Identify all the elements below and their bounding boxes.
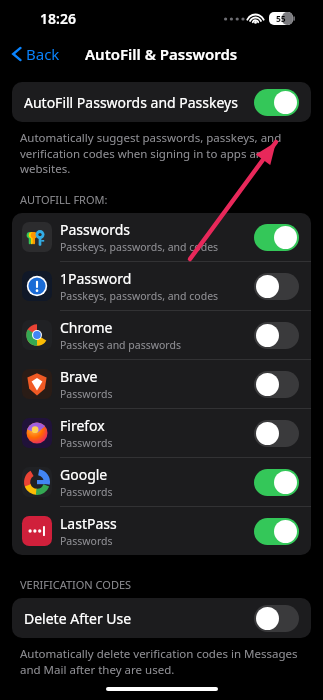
button[interactable]: Firefox [12, 409, 311, 457]
staticText: Passkeys, passwords, and codes [60, 240, 219, 254]
staticText: Automatically delete verification codes … [20, 646, 298, 677]
staticText: AutoFill Passwords and Passkeys [24, 93, 254, 112]
staticText: AUTOFILL FROM: [20, 192, 108, 207]
staticText: Chrome [60, 318, 113, 337]
button[interactable]: 1Password [12, 262, 311, 310]
button[interactable]: Off [254, 420, 299, 447]
button[interactable]: Off [254, 371, 299, 398]
staticText: Passkeys and passwords [60, 338, 181, 352]
button[interactable]: Google [12, 458, 311, 506]
button[interactable]: On [254, 224, 299, 251]
staticText: LastPass [60, 514, 117, 533]
button[interactable]: LastPass [12, 507, 311, 555]
button[interactable]: Brave [12, 360, 311, 408]
staticText: 18:26 [40, 9, 76, 28]
button[interactable]: Back [8, 40, 64, 68]
staticText: 55 [276, 13, 286, 25]
staticText: Back [26, 44, 60, 64]
button[interactable]: On [254, 518, 299, 545]
button[interactable]: Delete After Use [12, 598, 311, 638]
staticText: AutoFill & Passwords [85, 44, 238, 64]
button[interactable]: Off [254, 605, 299, 632]
button[interactable]: Passwords [12, 213, 311, 261]
staticText: Google [60, 465, 108, 484]
staticText: Passwords [60, 220, 131, 239]
staticText: VERIFICATION CODES [20, 577, 132, 592]
button[interactable]: Off [254, 273, 299, 300]
button[interactable]: Off [254, 322, 299, 349]
button[interactable]: On [254, 469, 299, 496]
staticText: Delete After Use [24, 609, 254, 628]
staticText: Passwords [60, 387, 113, 401]
button[interactable]: On [254, 89, 299, 116]
button[interactable]: AutoFill Passwords and Passkeys [12, 82, 311, 122]
button[interactable]: Chrome [12, 311, 311, 359]
staticText: Passwords [60, 485, 113, 499]
staticText: 1Password [60, 269, 132, 288]
staticText: Passkeys, passwords, and codes [60, 289, 219, 303]
staticText: Firefox [60, 416, 105, 435]
staticText: Brave [60, 367, 98, 386]
staticText: Passwords [60, 436, 113, 450]
staticText: Passwords [60, 534, 113, 548]
staticText: Automatically suggest passwords, passkey… [20, 130, 282, 176]
